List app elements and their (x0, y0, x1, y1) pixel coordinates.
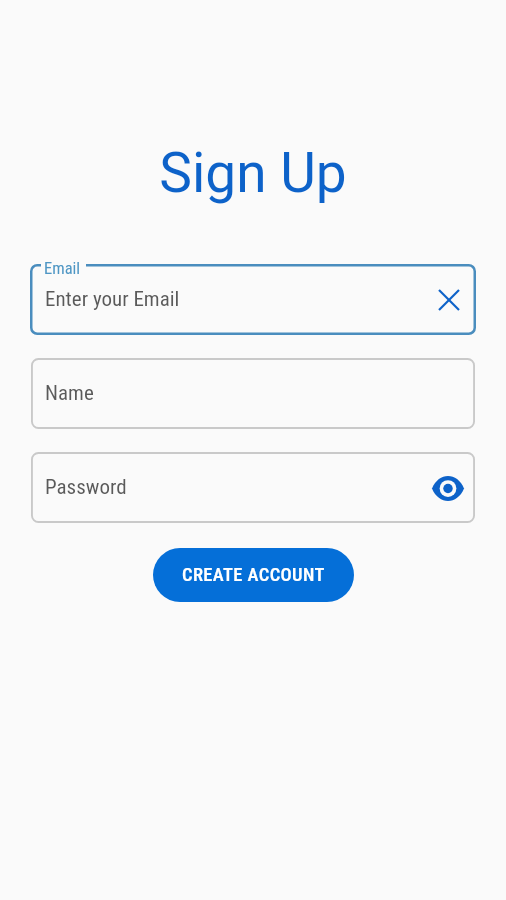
button[interactable]: CREATE ACCOUNT (153, 548, 354, 602)
staticText: CREATE ACCOUNT (182, 564, 325, 586)
button[interactable]: Password (31, 452, 475, 523)
staticText: Enter your Email (45, 287, 180, 312)
button[interactable]: Toggle password visibility (428, 468, 468, 508)
staticText: Email (44, 259, 81, 278)
button[interactable]: Enter your Email (30, 264, 476, 335)
button[interactable]: Clear email (429, 280, 469, 320)
button[interactable]: Name (31, 358, 475, 429)
staticText: Password (45, 475, 127, 500)
staticText: Sign Up (0, 141, 506, 205)
staticText: Name (45, 381, 94, 406)
